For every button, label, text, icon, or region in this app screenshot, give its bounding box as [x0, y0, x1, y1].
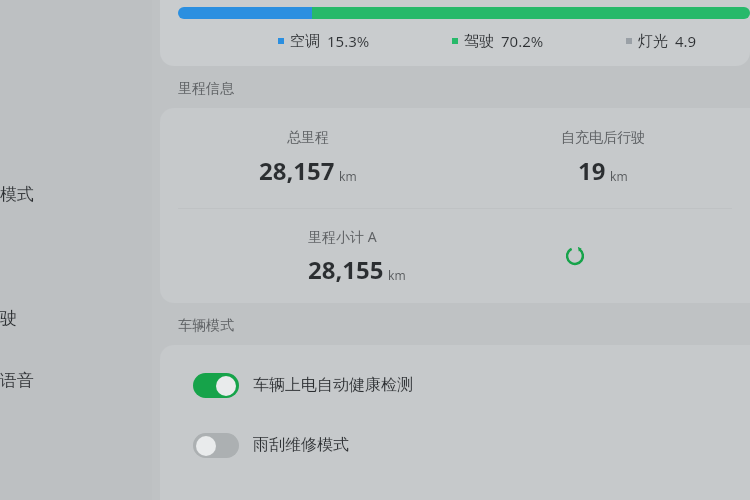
staticText: 28,157 [259, 154, 335, 187]
staticText: 车辆上电自动健康检测 [253, 375, 413, 395]
staticText: km [610, 168, 628, 184]
staticText: km [388, 267, 406, 283]
staticText: 19 [578, 154, 606, 187]
staticText: 车辆模式 [178, 317, 234, 335]
button[interactable]: 重置里程小计 [555, 236, 595, 276]
button[interactable]: 总里程 [160, 108, 750, 208]
staticText: 里程信息 [178, 80, 234, 98]
button[interactable]: 智能语音 [0, 364, 152, 396]
button[interactable]: 车辆上电自动健康检测 [160, 355, 750, 415]
staticText: 驾驶 [464, 32, 494, 51]
staticText: 动驾驶 [0, 308, 17, 329]
staticText: 雨刮维修模式 [253, 435, 349, 455]
button[interactable]: 里程小计 A [160, 209, 750, 303]
staticText: 15.3% [327, 31, 370, 51]
staticText: 28,155 [308, 253, 384, 286]
button[interactable]: 动驾驶 [0, 302, 152, 334]
staticText: 4.9 [675, 31, 697, 51]
button[interactable]: 驾驶模式 [0, 178, 152, 210]
staticText: km [339, 168, 357, 184]
staticText: 空调 [290, 32, 320, 51]
staticText: 总里程 [287, 129, 329, 147]
button[interactable]: 雨刮维修模式 [160, 415, 750, 475]
staticText: 里程小计 A [308, 227, 377, 246]
staticText: 自充电后行驶 [561, 129, 645, 147]
staticText: 驾驶模式 [0, 184, 34, 205]
staticText: 灯光 [638, 32, 668, 51]
staticText: 70.2% [501, 31, 544, 51]
staticText: 智能语音 [0, 370, 34, 391]
